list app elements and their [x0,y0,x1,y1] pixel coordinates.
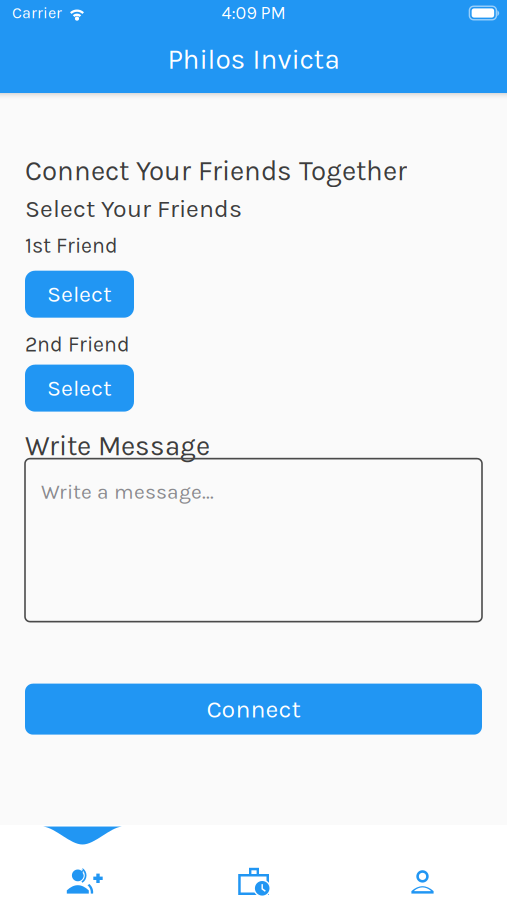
button[interactable]: Select [25,271,134,318]
button[interactable]: Connect friends [0,825,169,900]
staticText: 4:09 PM [221,2,285,23]
staticText: Carrier [12,4,62,22]
button[interactable]: Profile [338,825,507,900]
staticText: Select [47,281,112,308]
staticText: Write Message [25,430,210,462]
button[interactable]: Connect [25,684,482,735]
staticText: 1st Friend [25,233,118,258]
staticText: 2nd Friend [25,332,130,357]
staticText: Select Your Friends [25,194,242,223]
staticText: Connect [206,695,300,724]
button[interactable]: Scheduled [169,825,338,900]
staticText: Philos Invicta [167,43,339,76]
staticText: Select [47,375,112,402]
button[interactable]: Select [25,365,134,412]
staticText: Connect Your Friends Together [25,155,407,187]
staticText: Write a message... [41,480,214,504]
